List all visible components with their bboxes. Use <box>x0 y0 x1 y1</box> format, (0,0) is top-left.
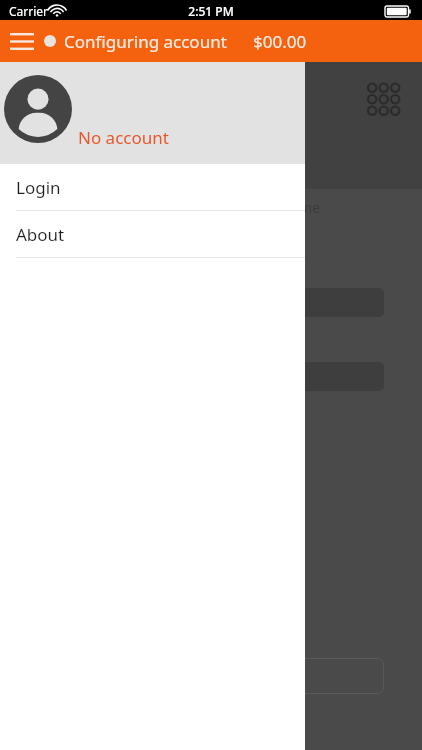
button[interactable] <box>240 288 384 317</box>
staticText: About <box>16 223 65 246</box>
staticText: Configuring account <box>64 30 227 53</box>
button[interactable]: About <box>0 211 305 257</box>
button[interactable] <box>240 362 384 391</box>
button[interactable] <box>240 658 384 694</box>
staticText: 2:51 PM <box>0 3 422 19</box>
button[interactable]: Login <box>0 164 305 210</box>
staticText: $00.00 <box>253 30 307 53</box>
button[interactable]: Open navigation menu <box>0 20 44 62</box>
staticText: Carrier <box>9 3 49 19</box>
staticText: Username <box>252 198 321 217</box>
staticText: Login <box>16 176 61 199</box>
button[interactable]: Keypad <box>364 80 400 116</box>
staticText: No account <box>78 126 169 149</box>
